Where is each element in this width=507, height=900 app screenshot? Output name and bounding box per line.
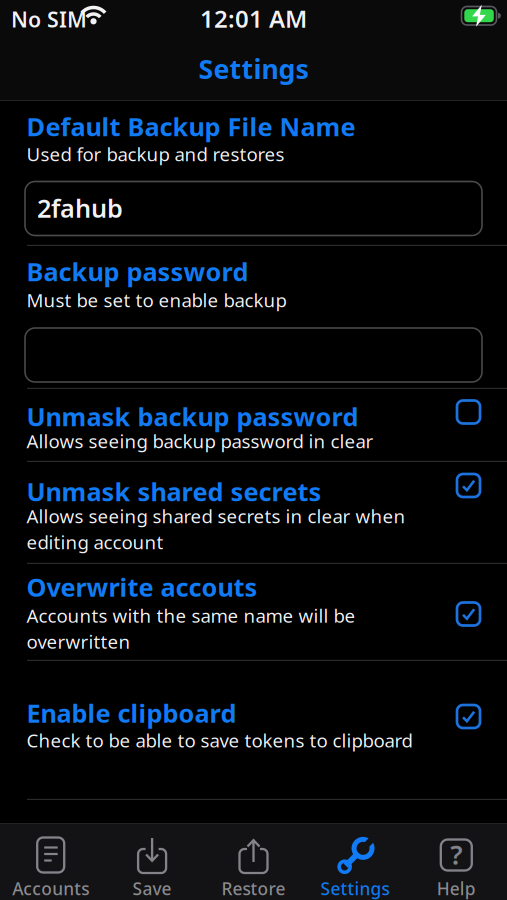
staticText: Unmask shared secrets (26, 475, 321, 508)
button[interactable]: Enable clipboard (0, 700, 507, 800)
staticText: No SIM (11, 5, 87, 33)
staticText: Help (437, 877, 476, 900)
staticText: Check to be able to save tokens to clipb… (26, 728, 412, 753)
staticText: 12:01 AM (200, 2, 307, 34)
button[interactable]: Accounts (0, 835, 101, 900)
button[interactable]: Unmask backup password (0, 389, 507, 462)
staticText: Save (133, 877, 172, 900)
staticText: Settings (198, 51, 308, 86)
staticText: Allows seeing shared secrets in clear wh… (26, 503, 405, 528)
staticText: Default Backup File Name (26, 110, 355, 143)
staticText: Enable clipboard (26, 696, 236, 730)
staticText: 2fahub (37, 191, 123, 225)
button[interactable]: Overwrite accouts (0, 564, 507, 661)
staticText: editing account (26, 529, 163, 554)
staticText: Allows seeing backup password in clear (26, 428, 373, 453)
button[interactable]: Save (101, 835, 203, 900)
button[interactable]: Help (406, 835, 507, 900)
button[interactable]: Restore (203, 835, 304, 900)
staticText: Restore (221, 877, 285, 900)
staticText: Accounts with the same name will be (26, 603, 355, 628)
staticText: Accounts (12, 877, 89, 900)
staticText: Used for backup and restores (26, 141, 284, 166)
staticText: ? (450, 837, 462, 872)
staticText: overwritten (26, 629, 130, 654)
staticText: Settings (320, 877, 389, 900)
button[interactable]: Unmask shared secrets (0, 462, 507, 564)
button[interactable]: Settings (304, 835, 406, 900)
staticText: Overwrite accouts (26, 570, 257, 604)
button[interactable]: Text field (25, 328, 482, 382)
staticText: Must be set to enable backup (26, 287, 286, 312)
button[interactable]: 2fahub (25, 181, 482, 235)
staticText: Backup password (26, 255, 248, 288)
staticText: Unmask backup password (26, 400, 358, 433)
